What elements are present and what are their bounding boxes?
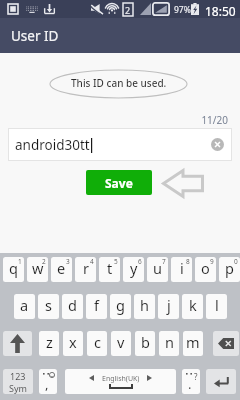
staticText: p: [225, 258, 234, 278]
staticText: e: [57, 258, 66, 278]
staticText: 123: [10, 370, 26, 382]
button[interactable]: 5: [99, 257, 120, 282]
staticText: z: [46, 332, 53, 352]
staticText: Save: [105, 175, 133, 191]
button[interactable]: ,: [39, 369, 57, 394]
button[interactable]: 0: [219, 257, 240, 282]
button[interactable]: f: [86, 294, 107, 319]
staticText: s: [45, 295, 52, 315]
staticText: 8: [186, 257, 190, 266]
staticText: b: [141, 332, 150, 352]
staticText: g: [116, 295, 125, 315]
staticText: 7: [162, 257, 166, 266]
staticText: j: [167, 295, 171, 315]
staticText: l: [215, 295, 219, 315]
button[interactable]: ?: [182, 369, 200, 394]
staticText: i: [180, 258, 184, 278]
button[interactable]: g: [110, 294, 131, 319]
staticText: o: [201, 258, 210, 278]
button[interactable]: 3: [51, 257, 72, 282]
staticText: m: [186, 332, 200, 352]
staticText: t: [107, 258, 113, 278]
staticText: u: [153, 258, 162, 278]
staticText: 6: [138, 257, 142, 266]
staticText: 5: [114, 257, 118, 266]
button[interactable]: m: [183, 331, 203, 356]
staticText: 1: [18, 257, 22, 266]
staticText: ?: [194, 371, 198, 382]
staticText: h: [140, 295, 149, 315]
staticText: 2: [125, 4, 131, 16]
button[interactable]: v: [111, 331, 131, 356]
staticText: 9: [210, 257, 214, 266]
staticText: 4: [90, 257, 94, 266]
button[interactable]: 4: [75, 257, 96, 282]
button[interactable]: j: [158, 294, 179, 319]
button[interactable]: l: [206, 294, 227, 319]
button[interactable]: 2: [27, 257, 48, 282]
button[interactable]: z: [39, 331, 59, 356]
button[interactable]: Backspace: [213, 331, 239, 356]
button[interactable]: Save: [86, 170, 152, 195]
button[interactable]: c: [87, 331, 107, 356]
button[interactable]: x: [63, 331, 83, 356]
staticText: 11/20: [0, 113, 228, 127]
button[interactable]: android30tt: [8, 128, 232, 161]
staticText: r: [83, 258, 89, 278]
button[interactable]: 6: [123, 257, 144, 282]
button[interactable]: d: [62, 294, 83, 319]
staticText: .: [188, 375, 192, 393]
staticText: ,: [45, 375, 49, 393]
staticText: k: [189, 295, 197, 315]
staticText: x: [69, 332, 77, 352]
button[interactable]: Space: [65, 369, 176, 394]
button[interactable]: Enter: [206, 369, 236, 394]
staticText: Sym: [9, 382, 27, 394]
staticText: v: [117, 332, 125, 352]
staticText: 3: [66, 257, 70, 266]
staticText: 2: [42, 257, 46, 266]
button[interactable]: 9: [195, 257, 216, 282]
staticText: User ID: [11, 27, 59, 45]
button[interactable]: b: [135, 331, 155, 356]
staticText: y: [130, 258, 138, 278]
staticText: 0: [234, 257, 238, 266]
staticText: f: [94, 295, 99, 315]
staticText: 97%: [174, 4, 191, 16]
button[interactable]: Clear text: [211, 138, 224, 151]
staticText: q: [9, 258, 18, 278]
button[interactable]: 7: [147, 257, 168, 282]
staticText: w: [32, 258, 44, 278]
staticText: 18:50: [205, 3, 236, 19]
staticText: n: [165, 332, 174, 352]
button[interactable]: Shift: [3, 331, 32, 356]
button[interactable]: 123: [3, 369, 33, 394]
button[interactable]: 1: [3, 257, 24, 282]
button[interactable]: k: [182, 294, 203, 319]
button[interactable]: s: [38, 294, 59, 319]
button[interactable]: h: [134, 294, 155, 319]
staticText: This ID can be used.: [71, 76, 167, 90]
staticText: android30tt: [15, 136, 90, 154]
button[interactable]: a: [14, 294, 35, 319]
button[interactable]: 8: [171, 257, 192, 282]
button[interactable]: n: [159, 331, 179, 356]
staticText: English(UK): [102, 374, 140, 384]
staticText: a: [20, 295, 29, 315]
staticText: d: [68, 295, 77, 315]
staticText: c: [94, 332, 101, 352]
